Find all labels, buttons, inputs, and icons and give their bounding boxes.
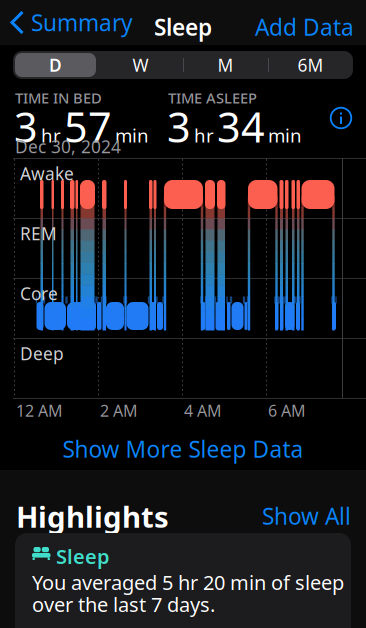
staticText: Core [20, 282, 58, 305]
staticText: 34 [217, 99, 265, 154]
staticText: 57 [64, 99, 112, 154]
staticText: D [49, 53, 62, 76]
button[interactable]: More information [330, 107, 352, 129]
staticText: You averaged 5 hr 20 min of sleep [32, 569, 344, 596]
staticText: Awake [20, 162, 74, 185]
button[interactable]: 6M [268, 51, 353, 79]
staticText: 6M [297, 53, 323, 76]
staticText: Dec 30, 2024 [15, 135, 121, 158]
staticText: Summary [31, 7, 133, 37]
staticText: Show All [262, 501, 351, 531]
staticText: Add Data [255, 12, 354, 42]
staticText: Show More Sleep Data [62, 434, 303, 464]
staticText: Highlights [16, 497, 169, 536]
button[interactable]: Show More Sleep Data [62, 434, 303, 464]
staticText: hr [194, 123, 214, 148]
button[interactable]: Show All [262, 501, 351, 531]
button[interactable]: Summary [10, 0, 133, 45]
staticText: TIME ASLEEP [168, 88, 257, 107]
staticText: 2 AM [100, 400, 138, 421]
button[interactable]: M [183, 51, 268, 79]
staticText: min [268, 123, 302, 148]
staticText: hr [41, 123, 61, 148]
staticText: 3 [14, 99, 38, 154]
button[interactable]: D [15, 53, 96, 77]
staticText: M [217, 53, 233, 76]
button[interactable]: Add Data [255, 12, 354, 42]
staticText: Deep [20, 342, 64, 365]
staticText: 3 [167, 99, 191, 154]
staticText: min [115, 123, 149, 148]
staticText: 4 AM [184, 400, 222, 421]
button[interactable]: Sleep [15, 533, 351, 628]
staticText: REM [20, 222, 57, 245]
staticText: 6 AM [268, 400, 306, 421]
staticText: W [132, 53, 148, 76]
staticText: over the last 7 days. [32, 591, 215, 618]
staticText: 12 AM [16, 400, 63, 421]
staticText: Sleep [154, 12, 212, 42]
button[interactable]: W [98, 51, 183, 79]
staticText: Sleep [56, 543, 110, 570]
staticText: TIME IN BED [15, 88, 102, 107]
